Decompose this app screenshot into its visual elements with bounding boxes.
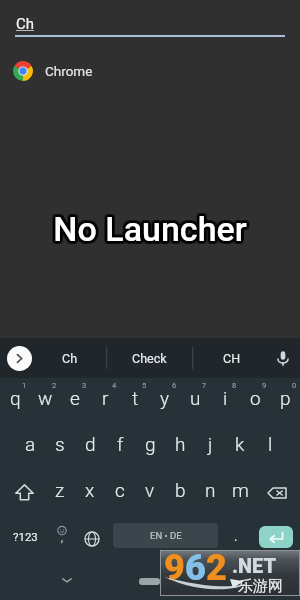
staticText: No Launcher [56, 211, 250, 251]
staticText: No Launcher [50, 207, 244, 247]
staticText: EN • DE [150, 530, 182, 541]
button[interactable]: Backspace [262, 471, 292, 515]
staticText: No Launcher [55, 212, 249, 252]
staticText: 5 [142, 381, 147, 390]
button[interactable]: u [180, 376, 210, 420]
staticText: l [268, 433, 273, 455]
staticText: No Launcher [50, 209, 244, 249]
button[interactable]: w [30, 376, 60, 420]
button[interactable]: z [45, 468, 75, 512]
staticText: No Launcher [52, 212, 246, 252]
button[interactable]: n [195, 468, 225, 512]
button[interactable]: a [15, 422, 45, 466]
button[interactable]: Check [119, 338, 179, 378]
button[interactable]: Expand suggestions [7, 346, 32, 371]
staticText: No Launcher [55, 207, 249, 247]
staticText: j [208, 433, 213, 455]
button[interactable]: q [0, 376, 30, 420]
staticText: i [223, 387, 228, 409]
button[interactable]: Ch [0, 0, 300, 42]
staticText: g [145, 433, 156, 455]
staticText: No Launcher [55, 209, 249, 249]
button[interactable]: h [165, 422, 195, 466]
button[interactable]: i [210, 376, 240, 420]
button[interactable]: p [270, 376, 300, 420]
button[interactable]: o [240, 376, 270, 420]
button[interactable]: j [195, 422, 225, 466]
staticText: No Launcher [54, 207, 248, 247]
staticText: No Launcher [53, 212, 247, 252]
staticText: 0 [292, 381, 297, 390]
button[interactable]: y [150, 376, 180, 420]
staticText: . [234, 529, 238, 544]
button[interactable]: CH [202, 338, 262, 378]
staticText: 6 [172, 381, 177, 390]
staticText: m [232, 479, 249, 501]
button[interactable]: e [60, 376, 90, 420]
staticText: 2 [52, 381, 57, 390]
staticText: No Launcher [52, 210, 246, 250]
staticText: ?123 [13, 530, 38, 543]
button[interactable]: t [120, 376, 150, 420]
staticText: s [55, 433, 65, 455]
staticText: o [250, 387, 261, 409]
button[interactable]: v [135, 468, 165, 512]
staticText: n [205, 479, 216, 501]
staticText: Check [132, 351, 167, 366]
button[interactable]: Space [113, 523, 218, 548]
staticText: No Launcher [56, 209, 250, 249]
button[interactable]: r [90, 376, 120, 420]
staticText: h [175, 433, 186, 455]
staticText: No Launcher [50, 210, 244, 250]
staticText: t [132, 387, 139, 409]
button[interactable]: Hide keyboard [56, 569, 78, 591]
staticText: d [85, 433, 96, 455]
button[interactable]: ?123 [7, 514, 43, 558]
button[interactable]: m [225, 468, 255, 512]
button[interactable]: d [75, 422, 105, 466]
staticText: Chrome [45, 63, 93, 79]
button[interactable]: . [224, 514, 248, 558]
staticText: No Launcher [54, 208, 248, 248]
staticText: No Launcher [51, 206, 245, 246]
staticText: No Launcher [50, 211, 244, 251]
button[interactable]: g [135, 422, 165, 466]
staticText: 4 [112, 381, 117, 390]
staticText: No Launcher [51, 208, 245, 248]
staticText: No Launcher [51, 209, 245, 249]
staticText: 2 [206, 547, 227, 589]
button[interactable]: Shift [9, 470, 39, 514]
staticText: No Launcher [56, 210, 250, 250]
staticText: r [102, 387, 109, 409]
staticText: e [70, 387, 80, 409]
staticText: No Launcher [51, 211, 245, 251]
button[interactable]: f [105, 422, 135, 466]
staticText: No Launcher [51, 207, 245, 247]
staticText: No Launcher [54, 209, 248, 249]
staticText: No Launcher [55, 206, 249, 246]
staticText: f [117, 433, 124, 455]
staticText: 乐游网 [238, 577, 283, 596]
staticText: Ch [16, 15, 35, 33]
staticText: No Launcher [53, 208, 247, 248]
button[interactable]: Chrome [0, 52, 300, 89]
staticText: No Launcher [52, 206, 246, 246]
staticText: No Launcher [54, 206, 248, 246]
staticText: k [235, 433, 245, 455]
button[interactable]: x [75, 468, 105, 512]
button[interactable]: Emoji [48, 513, 76, 557]
staticText: No Launcher [53, 209, 247, 249]
button[interactable]: Voice input [272, 347, 294, 369]
button[interactable]: c [105, 468, 135, 512]
button[interactable]: Ch [40, 338, 100, 378]
staticText: No Launcher [55, 211, 249, 251]
button[interactable]: s [45, 422, 75, 466]
button[interactable]: b [165, 468, 195, 512]
staticText: No Launcher [54, 210, 248, 250]
button[interactable]: k [225, 422, 255, 466]
staticText: No Launcher [50, 208, 244, 248]
staticText: CH [223, 351, 241, 366]
button[interactable]: Enter [259, 526, 293, 548]
button[interactable]: Change keyboard language [79, 517, 105, 561]
button[interactable]: l [255, 422, 285, 466]
